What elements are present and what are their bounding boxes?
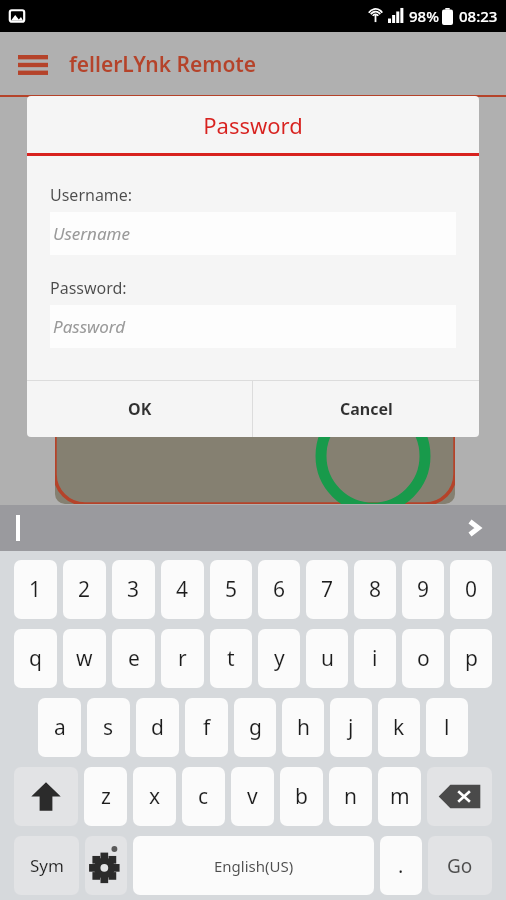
button[interactable]: u bbox=[306, 629, 348, 688]
staticText: t bbox=[227, 644, 235, 673]
staticText: Cancel bbox=[340, 398, 393, 420]
staticText: Sym bbox=[30, 854, 64, 877]
staticText: w bbox=[76, 644, 93, 673]
staticText: e bbox=[128, 644, 140, 673]
button[interactable]: q bbox=[14, 629, 57, 688]
staticText: 1 bbox=[29, 575, 42, 604]
staticText: g bbox=[249, 713, 262, 742]
button[interactable]: s bbox=[87, 698, 130, 757]
staticText: 9 bbox=[417, 575, 430, 604]
staticText: Go bbox=[447, 853, 473, 879]
staticText: i bbox=[372, 644, 378, 673]
button[interactable]: v bbox=[231, 767, 274, 826]
staticText: English(US) bbox=[214, 856, 294, 876]
button[interactable]: Open navigation menu bbox=[18, 49, 48, 79]
button[interactable]: OK bbox=[27, 381, 252, 437]
staticText: 2 bbox=[78, 575, 91, 604]
staticText: 8 bbox=[369, 575, 382, 604]
staticText: m bbox=[390, 782, 410, 811]
staticText: c bbox=[198, 782, 209, 811]
staticText: h bbox=[297, 713, 310, 742]
staticText: Password: bbox=[50, 277, 127, 299]
staticText: s bbox=[103, 713, 114, 742]
staticText: OK bbox=[128, 398, 152, 420]
button[interactable]: x bbox=[133, 767, 176, 826]
staticText: . bbox=[398, 852, 404, 879]
staticText: 4 bbox=[176, 575, 189, 604]
button[interactable]: k bbox=[378, 698, 420, 757]
staticText: o bbox=[417, 644, 430, 673]
staticText: 7 bbox=[321, 575, 334, 604]
button[interactable]: z bbox=[84, 767, 127, 826]
button[interactable]: w bbox=[63, 629, 106, 688]
button[interactable]: Username bbox=[50, 212, 456, 255]
staticText: 98% bbox=[409, 6, 439, 26]
staticText: v bbox=[247, 782, 258, 811]
staticText: k bbox=[393, 713, 405, 742]
staticText: 08:23 bbox=[459, 6, 498, 26]
staticText: 5 bbox=[225, 575, 238, 604]
staticText: u bbox=[321, 644, 334, 673]
staticText: q bbox=[29, 644, 42, 673]
button[interactable]: l bbox=[426, 698, 468, 757]
button[interactable]: 5 bbox=[210, 560, 252, 619]
staticText: 3 bbox=[127, 575, 140, 604]
button[interactable]: 7 bbox=[306, 560, 348, 619]
button[interactable]: c bbox=[182, 767, 225, 826]
button[interactable]: f bbox=[185, 698, 228, 757]
button[interactable]: r bbox=[161, 629, 204, 688]
staticText: Username bbox=[53, 222, 130, 245]
button[interactable]: 6 bbox=[258, 560, 300, 619]
staticText: n bbox=[344, 782, 357, 811]
button[interactable]: 9 bbox=[402, 560, 444, 619]
button[interactable]: Keyboard settings bbox=[85, 836, 127, 895]
staticText: r bbox=[178, 644, 187, 673]
button[interactable]: j bbox=[330, 698, 372, 757]
button[interactable]: p bbox=[450, 629, 492, 688]
button[interactable]: Password bbox=[50, 305, 456, 348]
staticText: a bbox=[54, 713, 66, 742]
button[interactable]: . bbox=[380, 836, 422, 895]
button[interactable]: m bbox=[378, 767, 421, 826]
button[interactable]: 4 bbox=[161, 560, 204, 619]
staticText: 0 bbox=[465, 575, 478, 604]
button[interactable]: g bbox=[234, 698, 276, 757]
staticText: x bbox=[149, 782, 161, 811]
button[interactable]: 1 bbox=[14, 560, 57, 619]
button[interactable]: Shift bbox=[14, 767, 78, 826]
button[interactable]: 3 bbox=[112, 560, 155, 619]
staticText: d bbox=[151, 713, 164, 742]
button[interactable]: English(US) bbox=[133, 836, 374, 895]
button[interactable]: n bbox=[329, 767, 372, 826]
button[interactable]: h bbox=[282, 698, 324, 757]
staticText: Password bbox=[53, 315, 126, 338]
staticText: j bbox=[348, 713, 354, 742]
staticText: l bbox=[444, 713, 450, 742]
staticText: Username: bbox=[50, 184, 133, 206]
staticText: z bbox=[101, 782, 111, 811]
button[interactable]: Sym bbox=[14, 836, 79, 895]
button[interactable]: b bbox=[280, 767, 323, 826]
button[interactable]: Go bbox=[428, 836, 492, 895]
button[interactable]: 0 bbox=[450, 560, 492, 619]
staticText: b bbox=[295, 782, 308, 811]
staticText: fellerLYnk Remote bbox=[69, 50, 257, 79]
staticText: y bbox=[274, 644, 285, 673]
button[interactable]: d bbox=[136, 698, 179, 757]
staticText: 6 bbox=[273, 575, 286, 604]
staticText: f bbox=[203, 713, 211, 742]
button[interactable]: t bbox=[210, 629, 252, 688]
button[interactable]: More suggestions bbox=[454, 508, 494, 548]
button[interactable]: i bbox=[354, 629, 396, 688]
button[interactable]: Cancel bbox=[253, 381, 479, 437]
button[interactable]: e bbox=[112, 629, 155, 688]
button[interactable]: 2 bbox=[63, 560, 106, 619]
staticText: Password bbox=[203, 110, 303, 140]
button[interactable]: Backspace bbox=[427, 767, 492, 826]
button[interactable]: o bbox=[402, 629, 444, 688]
staticText: p bbox=[465, 644, 478, 673]
button[interactable]: y bbox=[258, 629, 300, 688]
button[interactable]: 8 bbox=[354, 560, 396, 619]
button[interactable]: a bbox=[38, 698, 81, 757]
